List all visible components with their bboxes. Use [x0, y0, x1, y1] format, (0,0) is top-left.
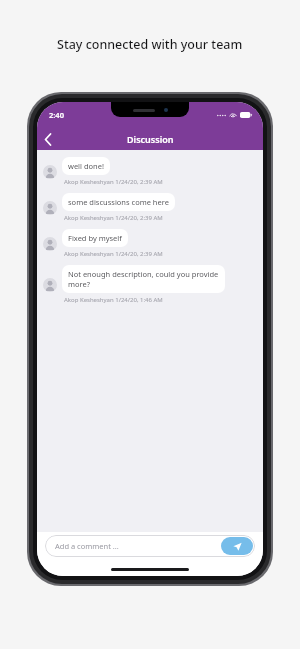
button[interactable]: Fixed by myself: [43, 229, 253, 258]
staticText: Akop Kesheshyan 1/24/20, 2:39 AM: [64, 178, 163, 186]
staticText: Not enough description, could you provid…: [68, 269, 219, 289]
button[interactable]: some discussions come here: [43, 193, 253, 222]
staticText: Add a comment ...: [55, 541, 221, 551]
button[interactable]: Send: [221, 537, 253, 555]
staticText: Stay connected with your team: [57, 36, 243, 53]
staticText: 2:40: [49, 110, 64, 120]
staticText: Fixed by myself: [68, 233, 122, 243]
staticText: Akop Kesheshyan 1/24/20, 1:46 AM: [64, 296, 163, 304]
button[interactable]: Back: [37, 128, 59, 150]
button[interactable]: Not enough description, could you provid…: [43, 265, 253, 304]
staticText: Discussion: [127, 133, 174, 145]
staticText: well done!: [68, 161, 104, 171]
button[interactable]: well done!: [43, 157, 253, 186]
staticText: Akop Kesheshyan 1/24/20, 2:39 AM: [64, 214, 163, 222]
staticText: some discussions come here: [68, 197, 169, 207]
button[interactable]: Add a comment ...: [45, 535, 255, 557]
staticText: Akop Kesheshyan 1/24/20, 2:39 AM: [64, 250, 163, 258]
